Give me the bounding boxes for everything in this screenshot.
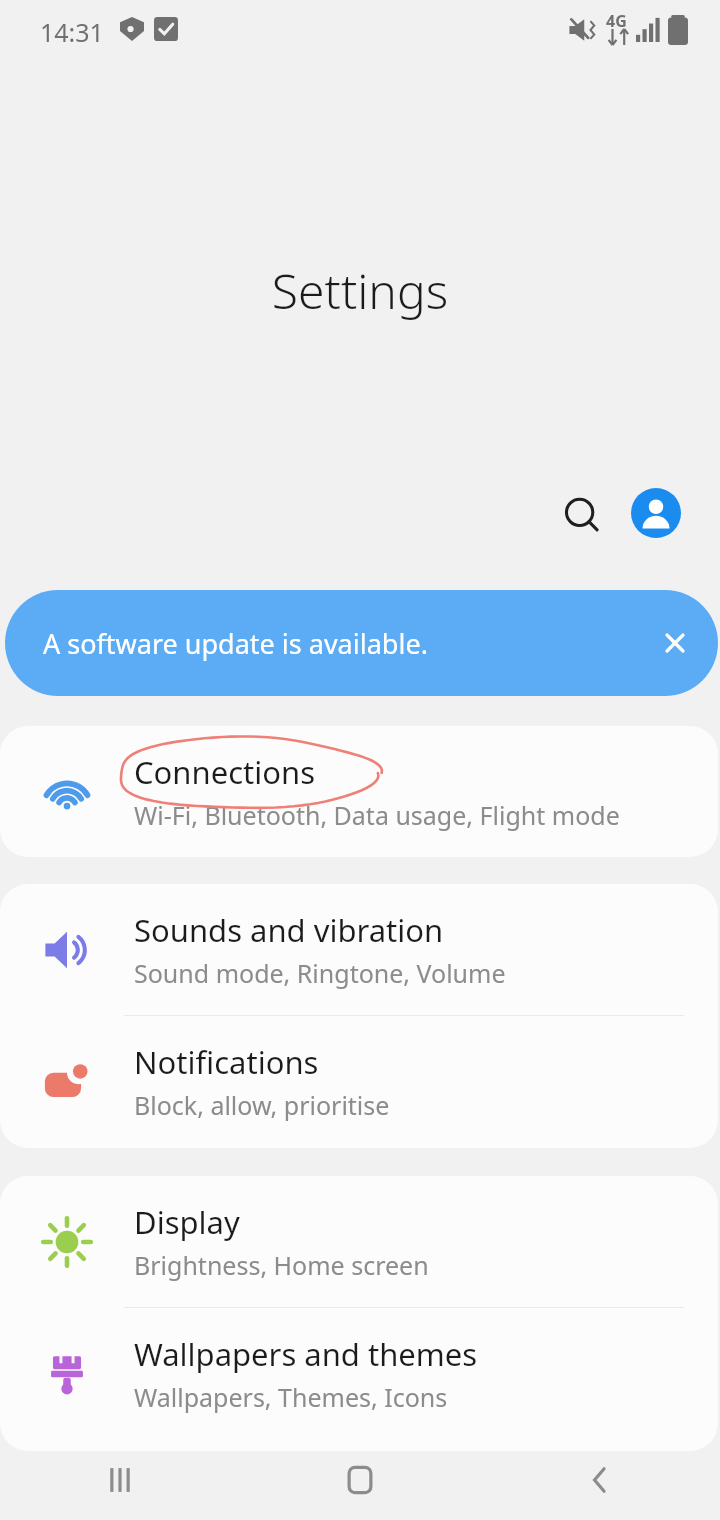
- button[interactable]: Display: [0, 1176, 718, 1307]
- staticText: Sound mode, Ringtone, Volume: [134, 956, 506, 990]
- button[interactable]: Home: [240, 1440, 480, 1520]
- staticText: Settings: [0, 258, 720, 323]
- staticText: 14:31: [40, 15, 104, 49]
- staticText: Connections: [134, 751, 315, 793]
- button[interactable]: Wallpapers and themes: [0, 1308, 718, 1439]
- button[interactable]: Account: [631, 488, 681, 538]
- button[interactable]: Sounds and vibration: [0, 884, 718, 1015]
- button[interactable]: Notifications: [0, 1016, 718, 1147]
- staticText: Wallpapers and themes: [134, 1333, 478, 1375]
- button[interactable]: Back: [480, 1440, 720, 1520]
- staticText: Sounds and vibration: [134, 909, 444, 951]
- staticText: Display: [134, 1201, 240, 1243]
- button[interactable]: Connections: [0, 726, 718, 857]
- staticText: A software update is available.: [43, 625, 640, 662]
- staticText: 4G: [606, 10, 627, 32]
- staticText: Wallpapers, Themes, Icons: [134, 1380, 448, 1414]
- button[interactable]: Search: [554, 487, 610, 543]
- staticText: Notifications: [134, 1041, 319, 1083]
- button[interactable]: Dismiss: [640, 608, 710, 678]
- staticText: Brightness, Home screen: [134, 1248, 429, 1282]
- button[interactable]: A software update is available.: [5, 590, 718, 696]
- button[interactable]: Recents: [0, 1440, 240, 1520]
- staticText: Wi-Fi, Bluetooth, Data usage, Flight mod…: [134, 798, 620, 832]
- staticText: Block, allow, prioritise: [134, 1088, 390, 1122]
